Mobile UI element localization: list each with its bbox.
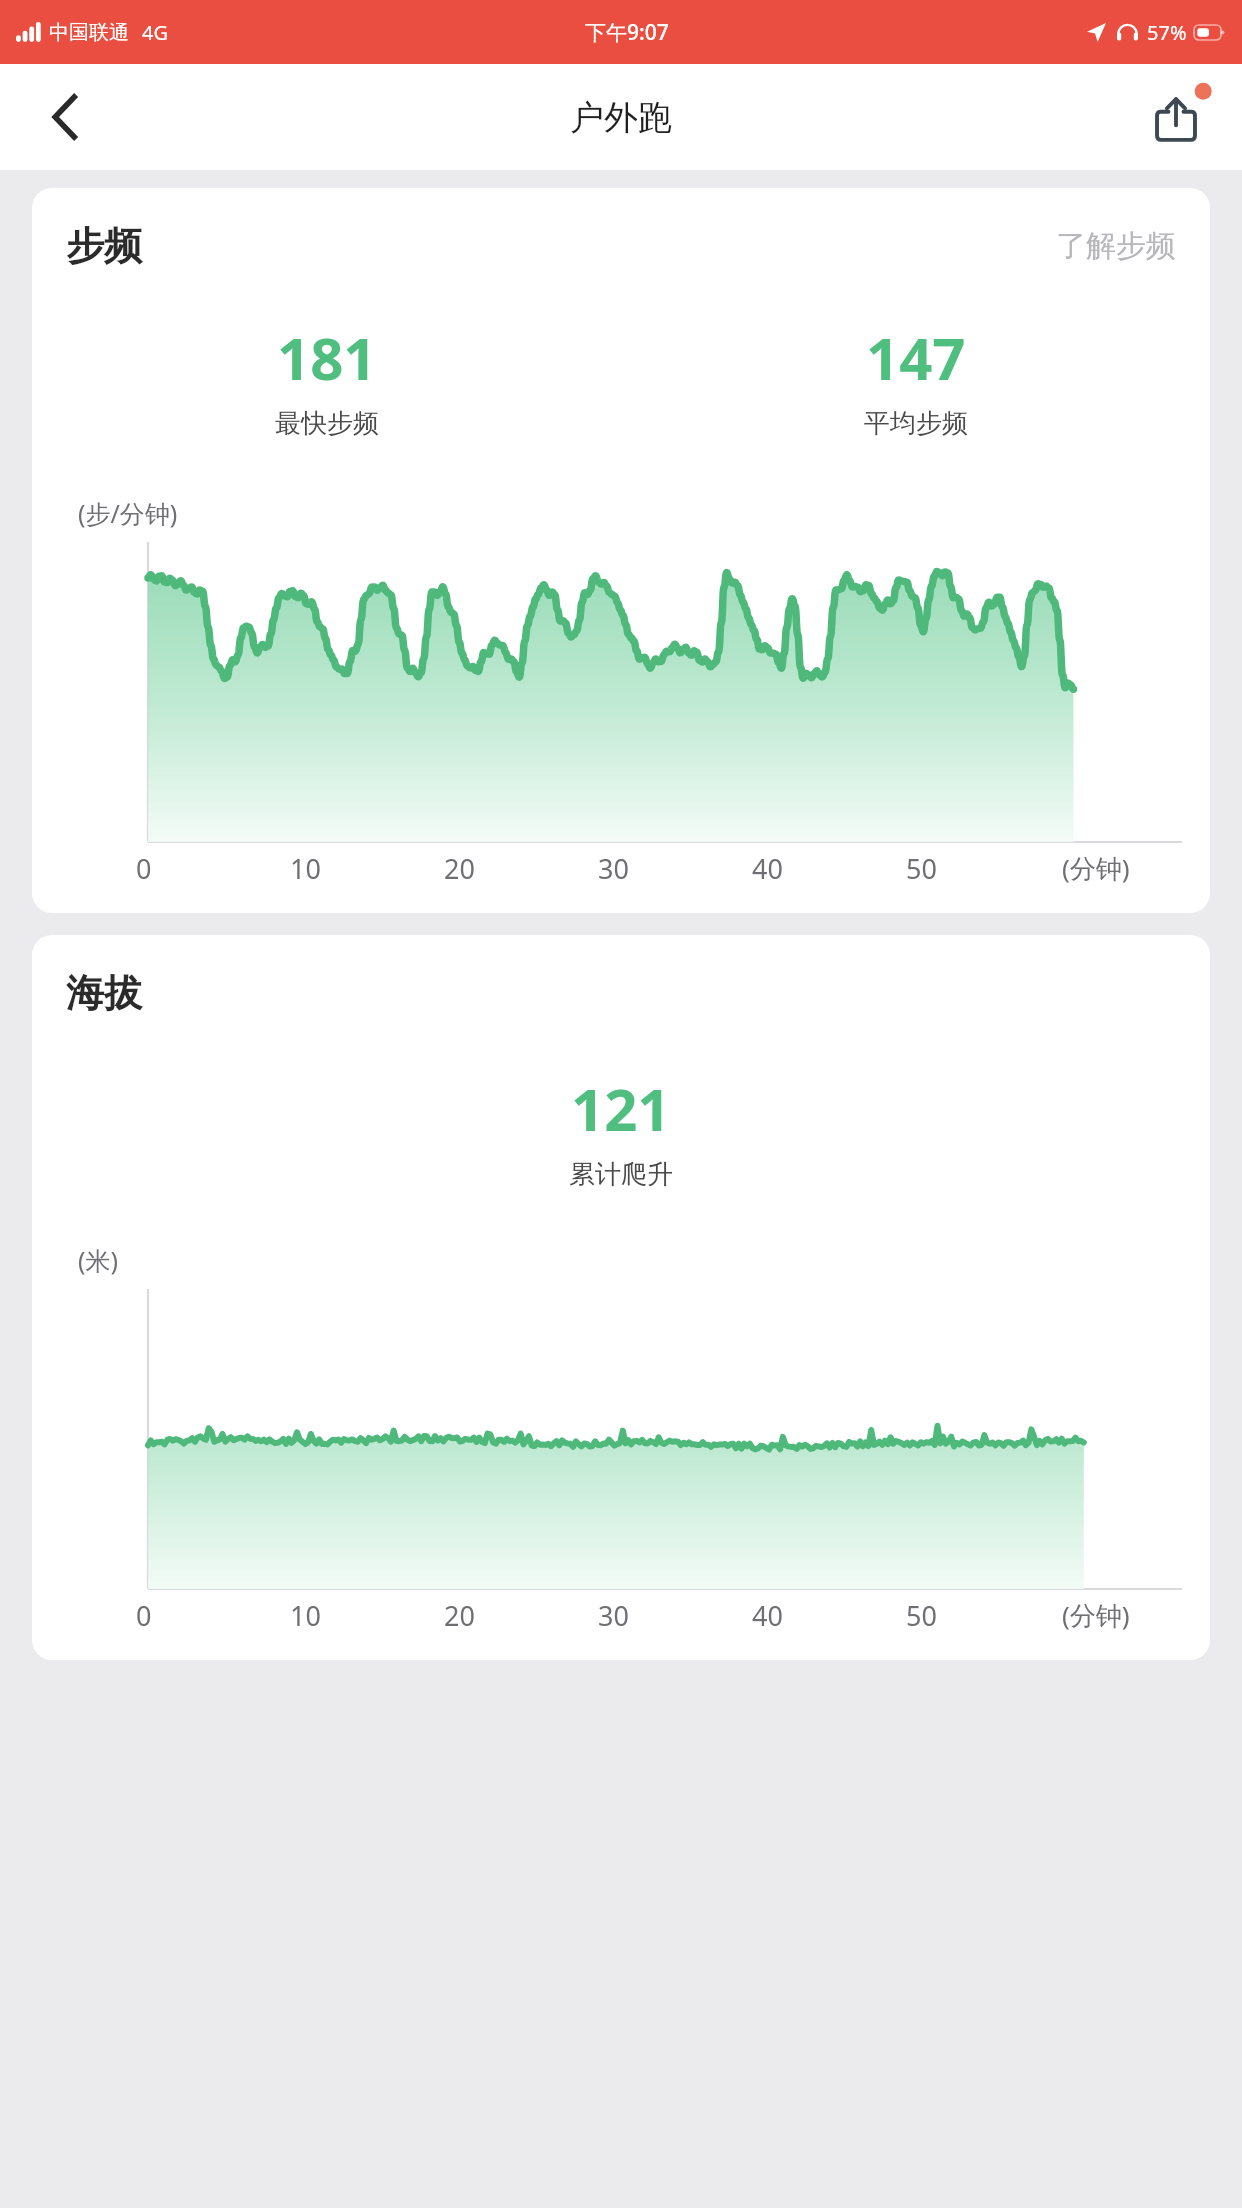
staticText: (分钟) (1062, 850, 1130, 886)
staticText: 40 (752, 1597, 783, 1634)
staticText: 200 (91, 525, 138, 526)
staticText: 40 (752, 850, 783, 887)
staticText: (分钟) (1062, 1597, 1130, 1633)
staticText: 4G (142, 19, 168, 46)
staticText: 0 (136, 850, 152, 887)
staticText: 121 (571, 1069, 671, 1148)
staticText: (步/分钟) (78, 496, 178, 530)
staticText: 30 (598, 1597, 629, 1634)
button[interactable]: Back (34, 86, 96, 148)
staticText: 平均步频 (864, 407, 968, 440)
staticText: 中国联通 (49, 20, 129, 45)
button[interactable]: 了解步频 (1056, 227, 1176, 265)
staticText: 累计爬升 (569, 1158, 673, 1191)
staticText: (米) (78, 1243, 119, 1277)
button[interactable]: Share (1142, 83, 1210, 151)
staticText: 10 (290, 1597, 321, 1634)
staticText: 户外跑 (570, 96, 672, 139)
staticText: 步频 (66, 222, 142, 270)
staticText: 147 (866, 318, 966, 397)
staticText: 20 (444, 1597, 475, 1634)
staticText: 海拔 (66, 969, 142, 1017)
staticText: 下午9:07 (585, 18, 669, 47)
staticText: 10 (290, 850, 321, 887)
staticText: 30 (598, 850, 629, 887)
staticText: 50 (906, 850, 937, 887)
staticText: 50 (906, 1597, 937, 1634)
staticText: 0 (136, 1597, 152, 1634)
staticText: 最快步频 (275, 407, 379, 440)
staticText: 57% (1147, 19, 1187, 46)
staticText: 了解步频 (1056, 227, 1176, 265)
staticText: 181 (277, 318, 377, 397)
staticText: 20 (444, 850, 475, 887)
staticText: 100 (91, 1272, 138, 1273)
